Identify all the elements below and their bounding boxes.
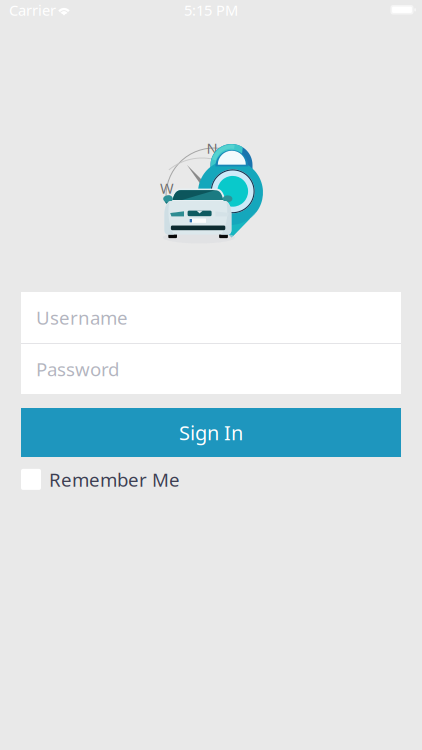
staticText: Remember Me bbox=[49, 467, 180, 492]
staticText: 5:15 PM bbox=[184, 0, 238, 20]
staticText: W bbox=[160, 178, 174, 198]
staticText: N bbox=[206, 138, 217, 158]
staticText: Carrier bbox=[9, 0, 56, 20]
staticText: Password bbox=[36, 357, 119, 381]
button[interactable]: Sign In bbox=[21, 408, 401, 457]
button[interactable]: Remember Me bbox=[21, 467, 180, 492]
button[interactable]: Username bbox=[21, 292, 401, 343]
staticText: Username bbox=[36, 305, 128, 330]
button[interactable]: Password bbox=[21, 344, 401, 394]
staticText: Sign In bbox=[179, 419, 243, 446]
